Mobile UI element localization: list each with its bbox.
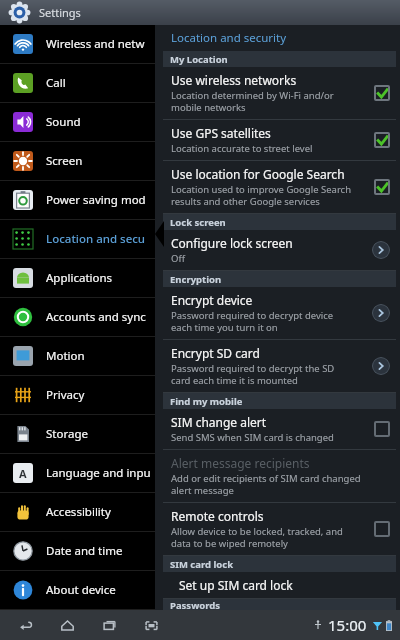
button[interactable]: Wireless and netw (0, 25, 155, 63)
staticText: Settings (39, 5, 81, 20)
staticText: Add or edit recipients of SIM card chang… (171, 472, 361, 497)
staticText: Wireless and netw (46, 36, 145, 52)
staticText: Allow device to be locked, tracked, and … (171, 525, 343, 550)
button[interactable]: Sound (0, 103, 155, 141)
button[interactable]: Location and secu (0, 220, 155, 258)
staticText: Use location for Google Search (171, 166, 345, 182)
button[interactable]: A (0, 454, 155, 492)
staticText: SIM card lock (170, 558, 234, 571)
other: Checked (374, 85, 390, 101)
other: Unchecked (374, 521, 390, 537)
button[interactable]: Encrypt SD card (163, 340, 396, 393)
staticText: Location accurate to street level (171, 142, 313, 155)
button[interactable]: Motion (0, 337, 155, 375)
button[interactable]: Privacy (0, 376, 155, 414)
button[interactable]: Accounts and sync (0, 298, 155, 336)
staticText: Send SMS when SIM card is changed (171, 431, 334, 444)
staticText: A (19, 466, 27, 481)
button[interactable]: Configure lock screen (163, 230, 396, 271)
staticText: Storage (46, 426, 88, 442)
other: Checked (374, 179, 390, 195)
staticText: Motion (46, 348, 85, 364)
staticText: Accessibility (46, 504, 111, 520)
button[interactable]: Encrypt device (163, 287, 396, 340)
staticText: Language and inpu (46, 465, 151, 481)
staticText: Use GPS satellites (171, 125, 271, 141)
staticText: Remote controls (171, 508, 264, 524)
staticText: Accounts and sync (46, 309, 146, 325)
staticText: Privacy (46, 387, 85, 403)
staticText: Screen (46, 153, 83, 169)
button[interactable]: Set up SIM card lock (163, 572, 396, 599)
staticText: Applications (46, 270, 113, 286)
staticText: About device (46, 582, 116, 598)
staticText: Passwords (170, 599, 221, 610)
staticText: Find my mobile (170, 395, 243, 408)
staticText: Alert message recipients (171, 455, 310, 471)
button[interactable]: Use wireless networks (163, 67, 396, 120)
button[interactable]: Screen (0, 142, 155, 180)
button[interactable]: Remote controls (163, 503, 396, 556)
staticText: Power saving mod (46, 192, 146, 208)
staticText: Date and time (46, 543, 123, 559)
button[interactable]: About device (0, 571, 155, 609)
staticText: Password required to decrypt the SD card… (171, 362, 335, 387)
staticText: Password required to decrypt device each… (171, 309, 334, 334)
button[interactable]: Home (54, 612, 80, 638)
other: Open (372, 241, 390, 259)
button[interactable]: Recents (96, 612, 122, 638)
button[interactable]: Use location for Google Search (163, 161, 396, 214)
button[interactable]: Storage (0, 415, 155, 453)
staticText: Set up SIM card lock (179, 577, 293, 593)
button[interactable]: Use GPS satellites (163, 120, 396, 161)
staticText: Location used to improve Google Search r… (171, 183, 352, 208)
button[interactable]: Back (12, 612, 38, 638)
button[interactable]: Date and time (0, 532, 155, 570)
staticText: Encrypt SD card (171, 345, 260, 361)
staticText: Location and security (171, 30, 287, 46)
other: Checked (374, 132, 390, 148)
staticText: Encryption (170, 273, 222, 286)
staticText: My Location (170, 53, 228, 66)
button[interactable]: Applications (0, 259, 155, 297)
button[interactable]: Screenshot (138, 612, 164, 638)
staticText: Sound (46, 114, 81, 130)
other: Unchecked (374, 421, 390, 437)
staticText: Use wireless networks (171, 72, 297, 88)
button[interactable]: Accessibility (0, 493, 155, 531)
staticText: 15:00 (328, 615, 367, 635)
staticText: Encrypt device (171, 292, 253, 308)
button[interactable]: SIM change alert (163, 409, 396, 450)
staticText: Location and secu (46, 231, 146, 247)
button[interactable]: Call (0, 64, 155, 102)
staticText: Configure lock screen (171, 235, 293, 251)
staticText: Call (46, 75, 66, 91)
button[interactable]: Alert message recipients (163, 450, 396, 503)
staticText: Location determined by Wi-Fi and/or mobi… (171, 89, 334, 114)
button[interactable]: Power saving mod (0, 181, 155, 219)
staticText: Off (171, 252, 185, 265)
other: Open (372, 357, 390, 375)
staticText: Lock screen (170, 216, 226, 229)
staticText: SIM change alert (171, 414, 267, 430)
other: Open (372, 304, 390, 322)
